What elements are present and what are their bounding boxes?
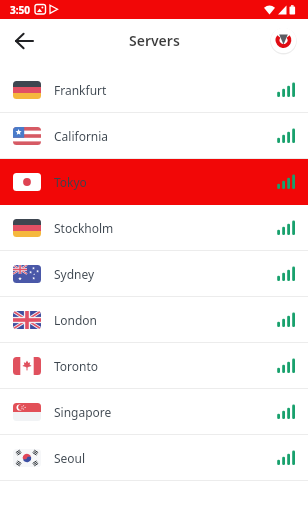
staticText: Tokyo (54, 174, 87, 190)
staticText: Singapore (54, 404, 112, 420)
button[interactable]: California (0, 113, 308, 159)
staticText: Servers (129, 31, 180, 50)
button[interactable]: Singapore (0, 389, 308, 435)
button[interactable]: Frankfurt (0, 67, 308, 113)
button[interactable]: Seoul (0, 435, 308, 481)
button[interactable] (270, 27, 297, 54)
staticText: Seoul (54, 450, 86, 466)
staticText: Toronto (54, 358, 99, 374)
button[interactable]: Sydney (0, 251, 308, 297)
button[interactable]: Toronto (0, 343, 308, 389)
button[interactable]: Stockholm (0, 205, 308, 251)
staticText: Sydney (54, 266, 95, 282)
staticText: Frankfurt (54, 82, 107, 98)
staticText: Stockholm (54, 220, 114, 236)
staticText: London (54, 312, 98, 328)
staticText: California (54, 128, 109, 144)
button[interactable]: Tokyo (0, 159, 308, 205)
button[interactable]: London (0, 297, 308, 343)
button[interactable] (8, 25, 40, 57)
staticText: 3:50 (10, 3, 30, 17)
